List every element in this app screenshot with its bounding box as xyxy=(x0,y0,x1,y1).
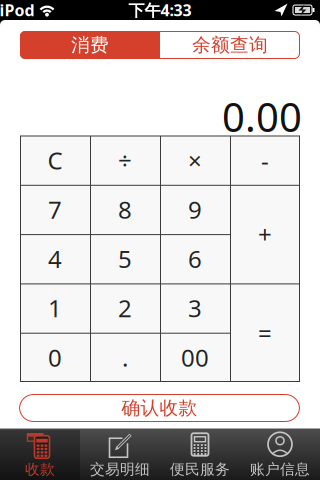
staticText: 5 xyxy=(118,243,132,275)
staticText: × xyxy=(188,144,202,176)
staticText: 1 xyxy=(48,292,62,324)
staticText: 余额查询 xyxy=(192,33,268,56)
button[interactable]: 2 xyxy=(90,283,160,333)
staticText: - xyxy=(261,144,269,176)
staticText: 0 xyxy=(48,341,62,373)
button[interactable]: 5 xyxy=(90,234,160,283)
staticText: 4 xyxy=(48,243,62,275)
button[interactable]: 0 xyxy=(20,333,90,382)
staticText: 7 xyxy=(48,193,62,225)
button[interactable]: . xyxy=(90,333,160,382)
button[interactable]: 4 xyxy=(20,234,90,283)
staticText: 确认收款 xyxy=(121,396,197,419)
button[interactable]: + xyxy=(230,185,300,283)
staticText: 6 xyxy=(188,243,202,275)
button[interactable]: 账户信息 xyxy=(240,429,320,479)
staticText: . xyxy=(122,341,128,373)
staticText: 账户信息 xyxy=(250,460,310,478)
button[interactable]: 9 xyxy=(160,185,230,234)
staticText: = xyxy=(258,317,272,349)
button[interactable]: 消费 xyxy=(20,31,160,59)
button[interactable]: = xyxy=(230,283,300,382)
staticText: iPod xyxy=(0,0,34,21)
button[interactable]: × xyxy=(160,135,230,185)
staticText: C xyxy=(47,144,62,176)
staticText: 9 xyxy=(188,193,202,225)
button[interactable]: 交易明细 xyxy=(80,429,160,479)
button[interactable]: 余额查询 xyxy=(160,31,300,59)
button[interactable]: 3 xyxy=(160,283,230,333)
button[interactable]: 00 xyxy=(160,333,230,382)
button[interactable]: 1 xyxy=(20,283,90,333)
staticText: ÷ xyxy=(118,144,132,176)
button[interactable]: C xyxy=(20,135,90,185)
staticText: 2 xyxy=(118,292,132,324)
staticText: 便民服务 xyxy=(170,460,230,478)
button[interactable]: ÷ xyxy=(90,135,160,185)
staticText: 消费 xyxy=(71,33,109,56)
button[interactable]: 7 xyxy=(20,185,90,234)
staticText: 交易明细 xyxy=(90,460,150,478)
button[interactable]: 便民服务 xyxy=(160,429,240,479)
staticText: 3 xyxy=(188,292,202,324)
staticText: 8 xyxy=(118,193,132,225)
staticText: + xyxy=(258,218,272,250)
button[interactable]: 8 xyxy=(90,185,160,234)
button[interactable]: 确认收款 xyxy=(19,394,300,422)
button[interactable]: 6 xyxy=(160,234,230,283)
button[interactable]: - xyxy=(230,135,300,185)
staticText: 收款 xyxy=(25,460,55,478)
staticText: 0.00 xyxy=(222,90,302,143)
staticText: 下午4:33 xyxy=(128,0,191,21)
staticText: 00 xyxy=(181,341,209,373)
button[interactable]: 收款 xyxy=(0,429,80,479)
